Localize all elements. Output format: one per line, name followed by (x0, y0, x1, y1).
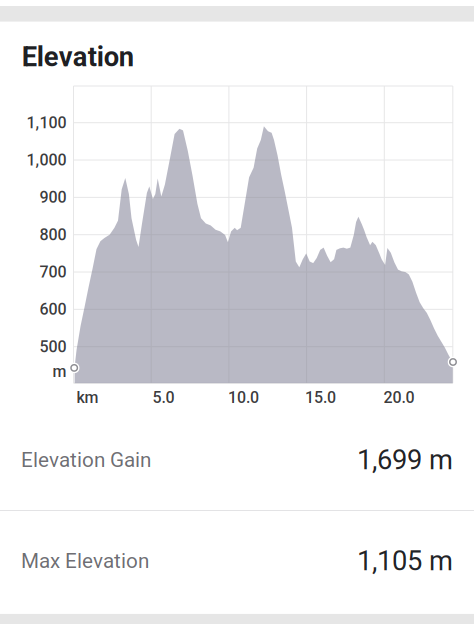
staticText: 1,000 (26, 151, 66, 169)
button[interactable]: Max Elevation (0, 511, 474, 611)
staticText: 600 (39, 300, 66, 319)
staticText: 800 (39, 225, 66, 244)
staticText: 1,105 m (357, 545, 453, 577)
staticText: 15.0 (305, 388, 336, 407)
staticText: 1,100 (26, 113, 66, 132)
staticText: 20.0 (383, 388, 414, 407)
staticText: km (76, 388, 98, 407)
staticText: 5.0 (152, 388, 174, 407)
staticText: Elevation Gain (21, 448, 151, 472)
staticText: 700 (39, 263, 66, 281)
staticText: Elevation (22, 41, 134, 73)
staticText: 500 (39, 337, 66, 356)
staticText: 1,699 m (357, 444, 453, 476)
staticText: 10.0 (228, 388, 259, 407)
button[interactable]: Elevation Gain (0, 410, 474, 510)
staticText: 900 (39, 188, 66, 207)
staticText: m (52, 362, 66, 381)
staticText: Max Elevation (21, 549, 149, 573)
